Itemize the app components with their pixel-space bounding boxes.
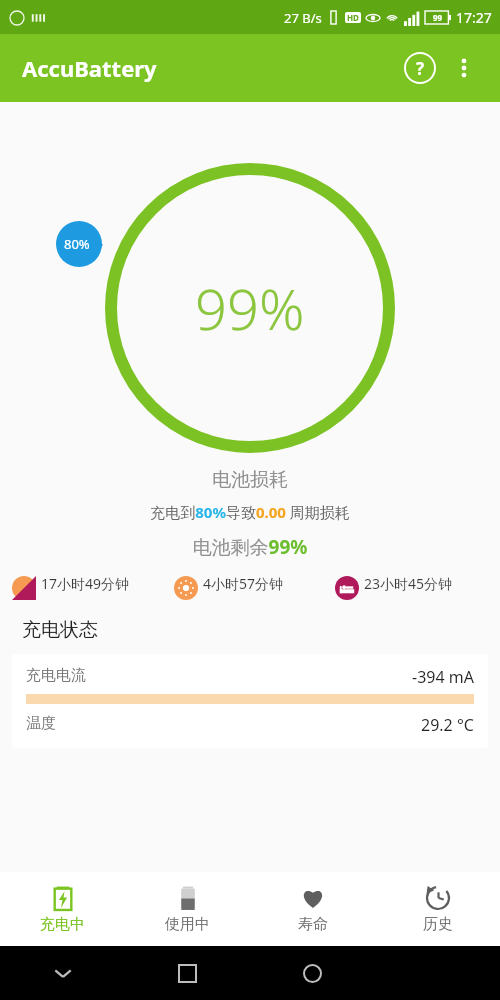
staticText: 历史 xyxy=(423,915,453,934)
staticText: -394 mA xyxy=(412,666,474,688)
button[interactable]: 使用中 xyxy=(125,872,250,946)
button[interactable]: 充电电流 xyxy=(12,654,488,748)
staticText: AccuBattery xyxy=(22,53,157,83)
staticText: 23小时45分钟 xyxy=(364,574,453,593)
staticText: HD xyxy=(347,12,359,23)
staticText: 电池剩余99% xyxy=(0,534,500,560)
staticText: ? xyxy=(416,57,425,80)
staticText: 温度 xyxy=(26,714,56,733)
staticText: 4小时57分钟 xyxy=(203,574,284,593)
staticText: 99 xyxy=(433,12,443,23)
button[interactable]: Back xyxy=(0,946,125,1000)
button[interactable]: Recents xyxy=(125,946,250,1000)
button[interactable]: 寿命 xyxy=(250,872,375,946)
staticText: 17:27 xyxy=(456,8,492,27)
staticText: 27 B/s xyxy=(284,9,322,27)
staticText: 80% xyxy=(64,235,90,253)
staticText: 充电电流 xyxy=(26,666,86,685)
button[interactable]: More options xyxy=(442,46,486,90)
button[interactable]: 4小时57分钟 xyxy=(170,574,331,600)
staticText: 充电中 xyxy=(40,915,85,934)
staticText: 充电到80%导致0.00 周期损耗 xyxy=(0,502,500,522)
button[interactable]: Help xyxy=(398,46,442,90)
button[interactable]: 充电中 xyxy=(0,872,125,946)
button[interactable]: 17小时49分钟 xyxy=(8,574,170,600)
button[interactable]: Home xyxy=(250,946,375,1000)
staticText: 使用中 xyxy=(165,915,210,934)
staticText: 寿命 xyxy=(298,915,328,934)
staticText: 29.2 °C xyxy=(421,714,474,736)
button[interactable]: 历史 xyxy=(375,872,500,946)
staticText: 充电状态 xyxy=(22,618,98,642)
button[interactable]: 23小时45分钟 xyxy=(331,574,492,600)
staticText: 99% xyxy=(195,270,305,346)
staticText: 17小时49分钟 xyxy=(41,574,130,593)
staticText: 电池损耗 xyxy=(0,468,500,492)
